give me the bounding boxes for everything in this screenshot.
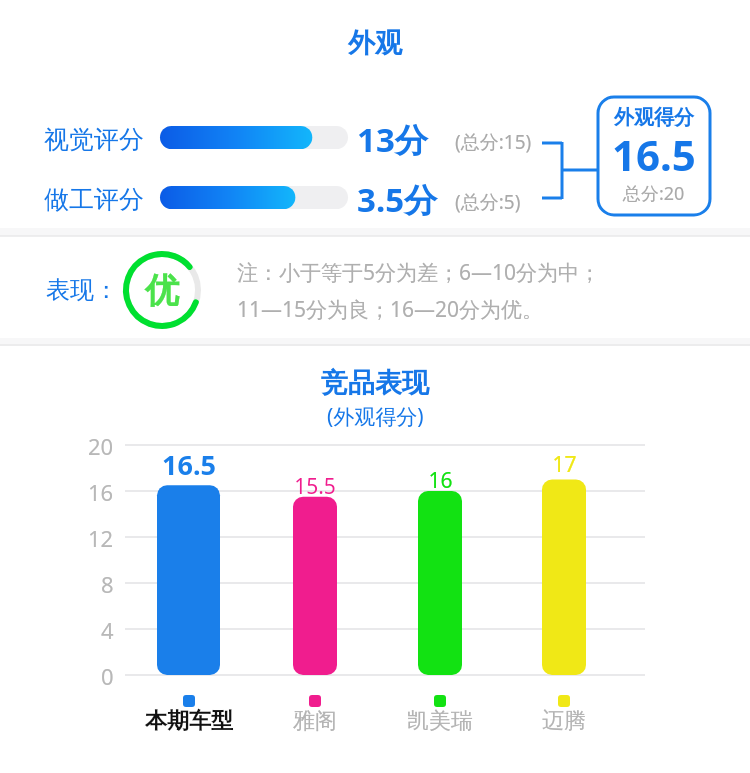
staticText: 表现：: [46, 275, 118, 305]
staticText: 本期车型: [145, 707, 233, 735]
staticText: (总分:15): [455, 129, 532, 155]
button[interactable]: 凯美瑞: [380, 687, 500, 747]
staticText: 外观: [348, 26, 402, 60]
staticText: 16.5: [162, 446, 216, 483]
staticText: 12: [88, 523, 114, 553]
staticText: 16: [428, 466, 453, 495]
staticText: 优: [145, 269, 179, 312]
staticText: 总分:20: [623, 181, 685, 206]
staticText: 15.5: [294, 472, 336, 501]
staticText: 视觉评分: [44, 124, 144, 155]
staticText: 雅阁: [293, 707, 337, 735]
staticText: 20: [88, 431, 114, 461]
staticText: 16: [88, 477, 114, 507]
staticText: 8: [101, 569, 114, 599]
staticText: 0: [101, 661, 114, 691]
button[interactable]: 迈腾: [504, 687, 624, 747]
staticText: 注：小于等于5分为差；6—10分为中；: [237, 258, 601, 287]
staticText: 竞品表现: [321, 366, 429, 400]
staticText: 外观得分: [614, 105, 694, 130]
staticText: (外观得分): [327, 402, 424, 431]
staticText: 17: [552, 450, 577, 479]
staticText: 做工评分: [44, 184, 144, 215]
staticText: 13分: [357, 117, 428, 162]
button[interactable]: 做工评分 3.5分: [20, 170, 550, 226]
staticText: 4: [101, 615, 114, 645]
staticText: 16.5: [612, 126, 696, 183]
staticText: 迈腾: [542, 707, 586, 735]
button[interactable]: 本期车型: [129, 687, 249, 747]
staticText: 11—15分为良；16—20分为优。: [237, 295, 544, 324]
button[interactable]: 外观得分: [598, 97, 710, 215]
staticText: (总分:5): [455, 189, 521, 215]
staticText: 3.5分: [357, 177, 438, 222]
staticText: 凯美瑞: [407, 707, 473, 735]
button[interactable]: 视觉评分 13分: [20, 110, 550, 166]
button[interactable]: 雅阁: [255, 687, 375, 747]
